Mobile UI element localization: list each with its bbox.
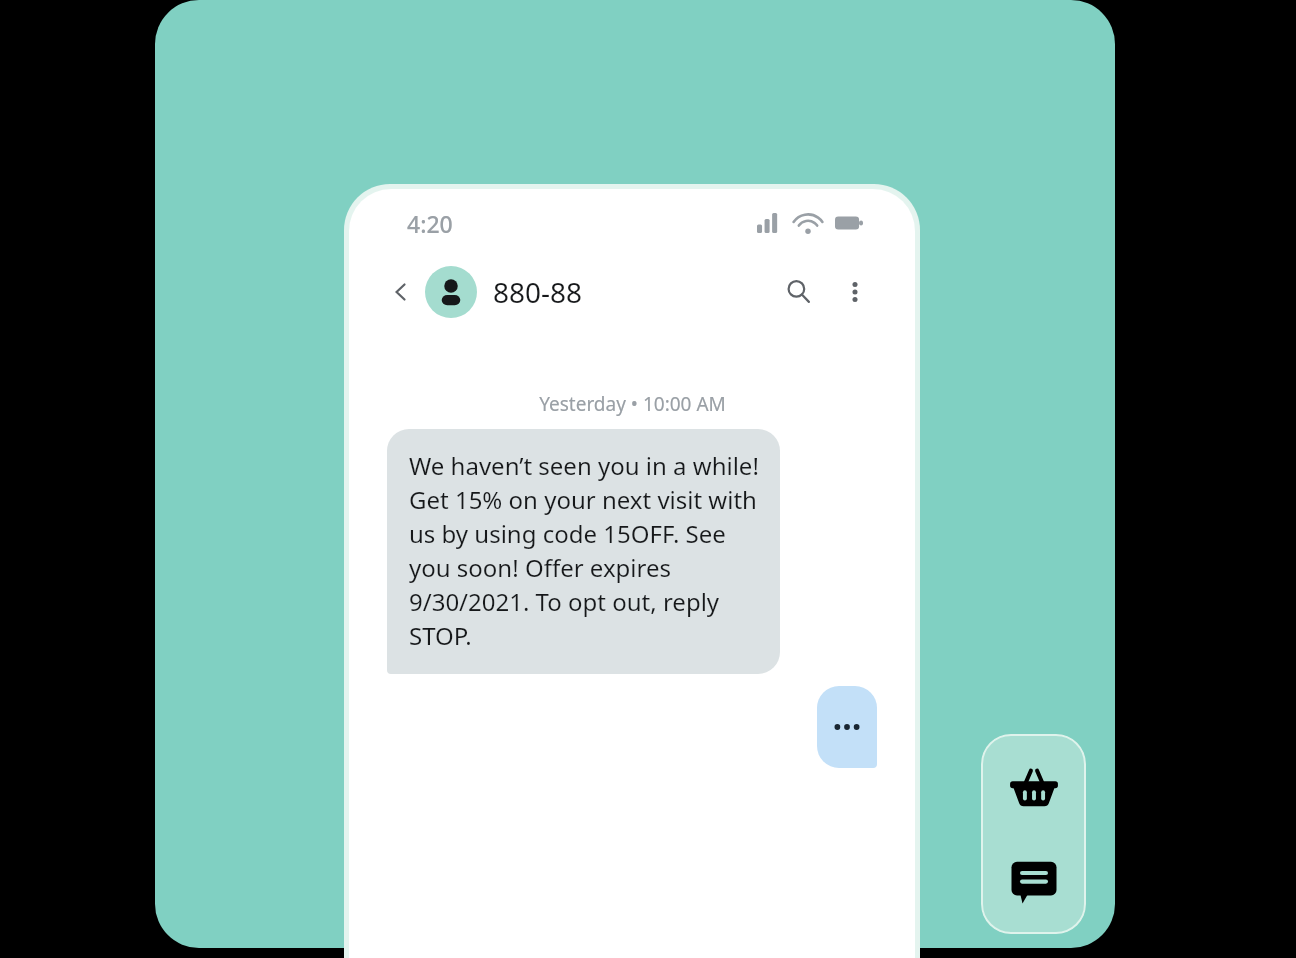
- button[interactable]: [817, 686, 877, 768]
- button[interactable]: We haven’t seen you in a while! Get 15% …: [387, 429, 780, 674]
- staticText: Yesterday • 10:00 AM: [539, 391, 726, 417]
- staticText: 4:20: [407, 208, 453, 239]
- staticText: We haven’t seen you in a while! Get 15% …: [409, 449, 760, 652]
- staticText: 880-88: [493, 273, 583, 311]
- button[interactable]: Back: [383, 274, 419, 310]
- button[interactable]: Shopping basket: [1001, 754, 1067, 820]
- button[interactable]: Search: [779, 272, 819, 312]
- button[interactable]: 880-88: [425, 266, 583, 318]
- button[interactable]: More options: [835, 272, 875, 312]
- button[interactable]: Messages: [1001, 848, 1067, 914]
